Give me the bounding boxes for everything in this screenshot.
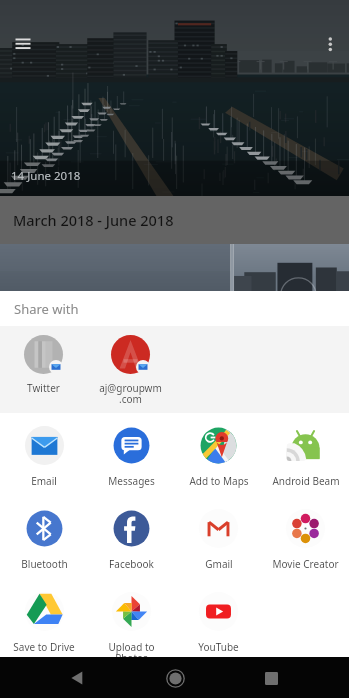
button[interactable]: Email xyxy=(0,413,88,496)
staticText: Upload to Photos xyxy=(108,640,155,662)
button[interactable]: Twitter xyxy=(0,326,87,413)
staticText: YouTube xyxy=(198,640,239,654)
staticText: March 2018 - June 2018 xyxy=(13,210,174,230)
staticText: Messages xyxy=(108,474,155,488)
button[interactable]: Upload to Photos xyxy=(88,579,175,662)
staticText: Movie Creator xyxy=(272,557,339,571)
button[interactable]: Menu xyxy=(8,30,38,60)
staticText: Twitter xyxy=(27,381,60,395)
staticText: aj@groupwm .com xyxy=(99,381,162,406)
button[interactable]: Messages xyxy=(88,413,175,496)
button[interactable]: Bluetooth xyxy=(0,496,88,579)
staticText: Gmail xyxy=(205,557,233,571)
staticText: Email xyxy=(31,474,57,488)
button[interactable]: YouTube xyxy=(175,579,262,662)
button[interactable]: More options xyxy=(315,30,345,60)
button[interactable]: Gmail xyxy=(175,496,262,579)
staticText: 14 June 2018 xyxy=(11,168,81,184)
button[interactable]: Home xyxy=(155,658,195,698)
staticText: Facebook xyxy=(109,557,154,571)
staticText: Android Beam xyxy=(272,474,340,488)
button[interactable]: Facebook xyxy=(88,496,175,579)
button[interactable]: Back xyxy=(57,658,97,698)
button[interactable]: Save to Drive xyxy=(0,579,88,662)
button[interactable]: Movie Creator xyxy=(262,496,349,579)
button[interactable]: Android Beam xyxy=(262,413,349,496)
button[interactable]: Recents xyxy=(251,658,291,698)
button[interactable]: Add to Maps xyxy=(175,413,262,496)
staticText: Bluetooth xyxy=(21,557,68,571)
staticText: Add to Maps xyxy=(189,474,249,488)
button[interactable]: aj@groupwm .com xyxy=(87,326,174,413)
staticText: Share with xyxy=(14,300,79,318)
staticText: Save to Drive xyxy=(13,640,75,654)
